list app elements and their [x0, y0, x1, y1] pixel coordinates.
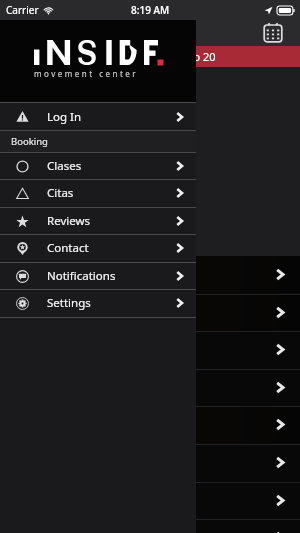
button[interactable] — [0, 482, 300, 519]
button[interactable] — [0, 406, 300, 443]
button[interactable] — [0, 369, 300, 406]
staticText: Log In — [47, 109, 82, 125]
button[interactable] — [0, 331, 300, 368]
button[interactable]: Log In — [0, 103, 196, 130]
staticText: Miercoles, 20 de Mayo 20 — [85, 49, 216, 64]
staticText: Booking — [11, 135, 48, 148]
button[interactable]: Reviews — [0, 208, 196, 234]
staticText: Carrier — [6, 3, 39, 17]
button[interactable] — [0, 519, 300, 533]
button[interactable]: Clases — [0, 153, 196, 179]
button[interactable]: Contact — [0, 235, 196, 261]
staticText: Contact — [47, 240, 89, 256]
button[interactable]: Notifications — [0, 263, 196, 289]
button[interactable]: Calendar — [263, 23, 283, 43]
button[interactable] — [0, 444, 300, 481]
button[interactable] — [0, 256, 300, 293]
staticText: Notifications — [47, 268, 116, 284]
staticText: Settings — [47, 295, 91, 311]
staticText: Clases — [47, 158, 82, 174]
staticText: movement center — [34, 68, 139, 79]
staticText: Citas — [47, 185, 74, 201]
staticText: Reviews — [47, 213, 91, 229]
button[interactable]: Settings — [0, 290, 196, 316]
staticText: 8:19 AM — [131, 3, 170, 17]
button[interactable]: Citas — [0, 180, 196, 206]
button[interactable] — [0, 294, 300, 331]
